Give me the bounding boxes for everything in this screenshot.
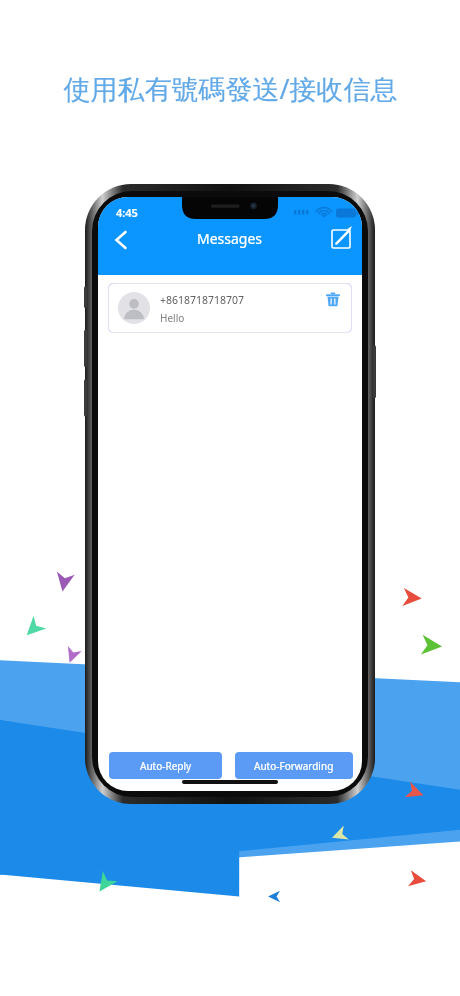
button[interactable]: Compose message bbox=[326, 224, 356, 254]
staticText: Auto-Reply bbox=[140, 759, 192, 773]
staticText: Hello bbox=[160, 311, 185, 325]
staticText: 4:45 bbox=[116, 205, 138, 220]
button[interactable]: Delete conversation bbox=[322, 289, 344, 311]
button[interactable]: Auto-Reply bbox=[109, 752, 222, 779]
button[interactable]: Back bbox=[104, 223, 138, 257]
staticText: Messages bbox=[197, 229, 263, 248]
staticText: 使用私有號碼發送/接收信息 bbox=[63, 70, 398, 107]
button[interactable]: +8618718718707 bbox=[108, 283, 352, 333]
button[interactable]: Auto-Forwarding bbox=[235, 752, 353, 779]
staticText: +8618718718707 bbox=[160, 293, 245, 307]
staticText: Auto-Forwarding bbox=[254, 759, 334, 773]
